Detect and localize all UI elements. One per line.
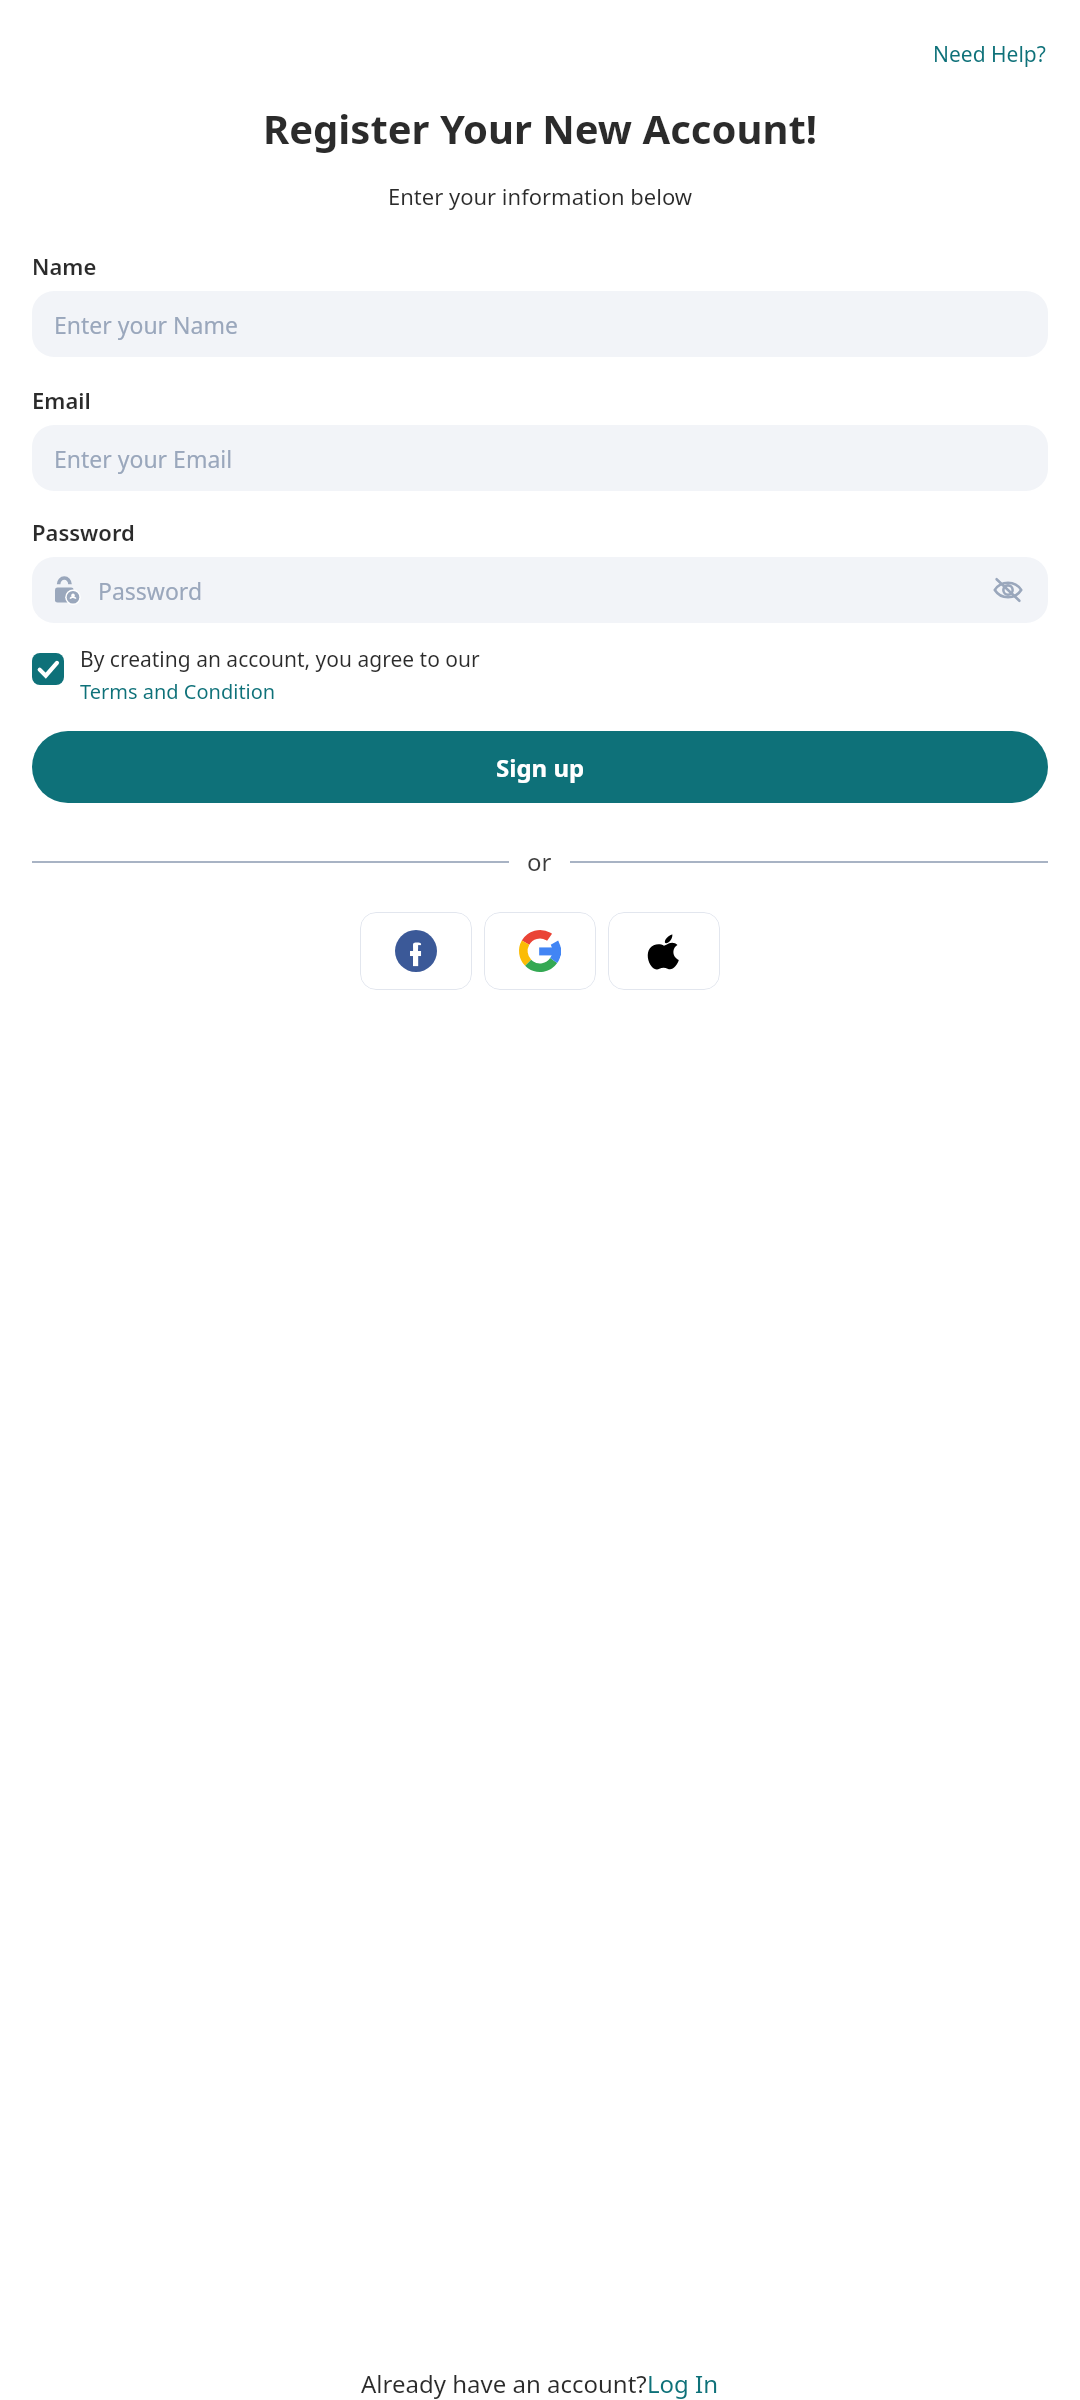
staticText: Need Help? [933, 40, 1046, 69]
staticText: Email [32, 385, 91, 415]
staticText: Register Your New Account! [32, 101, 1048, 155]
staticText: Password [32, 517, 135, 547]
button[interactable]: Sign up with Apple [608, 912, 720, 990]
staticText: By creating an account, you agree to our [80, 645, 480, 674]
button[interactable]: Need Help? [931, 38, 1048, 71]
staticText: Enter your Email [54, 443, 233, 474]
button[interactable]: Sign up with Facebook [360, 912, 472, 990]
staticText: Enter your information below [32, 181, 1048, 211]
staticText: Sign up [496, 751, 585, 784]
button[interactable]: Log In [647, 2367, 719, 2400]
button[interactable]: Enter your Name [32, 291, 1048, 357]
staticText: or [527, 845, 552, 878]
button[interactable]: Password [32, 557, 1048, 623]
button[interactable]: Sign up [32, 731, 1048, 803]
button[interactable]: Sign up with Google [484, 912, 596, 990]
button[interactable]: Show password [988, 570, 1028, 610]
staticText: Already have an account? [361, 2367, 647, 2400]
button[interactable]: Terms and Condition [80, 678, 276, 705]
button[interactable]: Agree to terms checkbox [32, 653, 64, 685]
staticText: Terms and Condition [80, 678, 276, 705]
staticText: Password [98, 575, 203, 606]
staticText: Log In [647, 2367, 719, 2400]
staticText: Name [32, 251, 97, 281]
staticText: Enter your Name [54, 309, 238, 340]
button[interactable]: Enter your Email [32, 425, 1048, 491]
